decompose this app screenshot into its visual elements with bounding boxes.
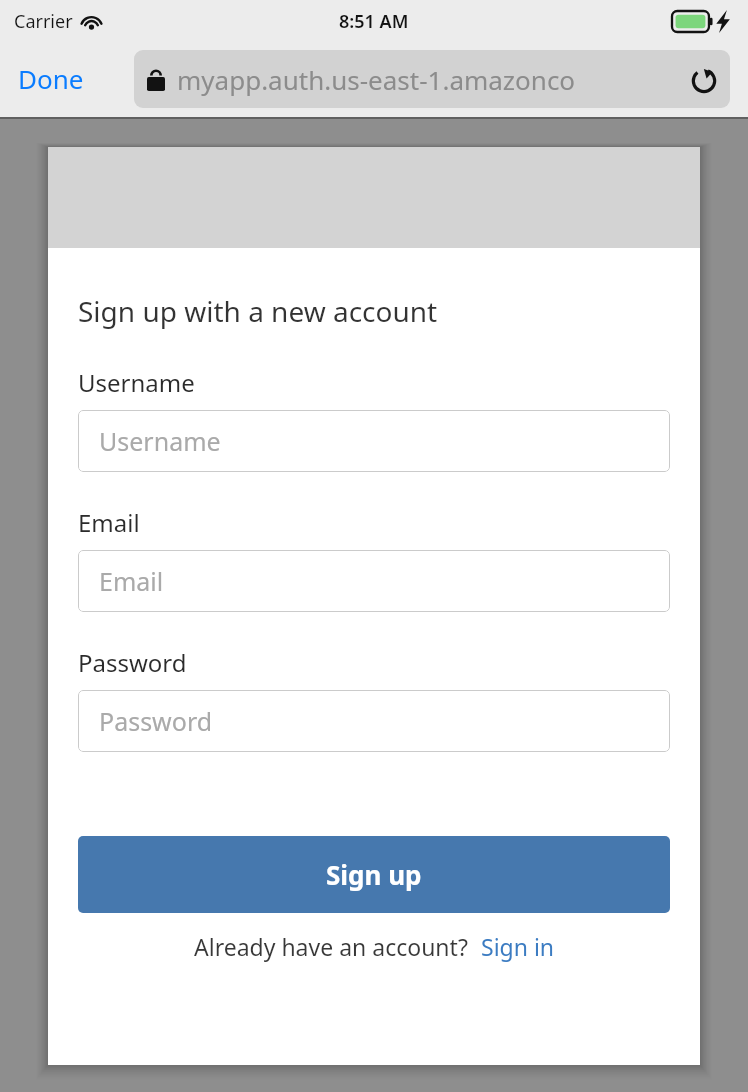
staticText: Already have an account? — [194, 931, 468, 962]
button[interactable]: Reload page — [678, 53, 730, 105]
staticText: Email — [78, 506, 140, 539]
button[interactable]: Done — [18, 58, 84, 98]
staticText: Username — [99, 424, 221, 458]
staticText: 8:51 AM — [339, 9, 409, 34]
button[interactable]: Password — [78, 690, 670, 752]
staticText: Sign up — [326, 857, 422, 892]
staticText: Password — [78, 646, 187, 679]
staticText: Sign up with a new account — [78, 292, 438, 330]
staticText: Email — [99, 564, 164, 598]
button[interactable]: myapp.auth.us-east-1.amazonco — [134, 50, 730, 108]
staticText: Done — [18, 61, 84, 96]
staticText: Password — [99, 704, 213, 738]
button[interactable]: Email — [78, 550, 670, 612]
staticText: myapp.auth.us-east-1.amazonco — [177, 62, 576, 97]
staticText: Sign in — [481, 931, 555, 962]
staticText: Username — [78, 366, 195, 399]
staticText: Carrier — [14, 9, 73, 34]
button[interactable]: Sign in — [481, 931, 555, 962]
button[interactable]: Username — [78, 410, 670, 472]
button[interactable]: Sign up — [78, 836, 670, 913]
